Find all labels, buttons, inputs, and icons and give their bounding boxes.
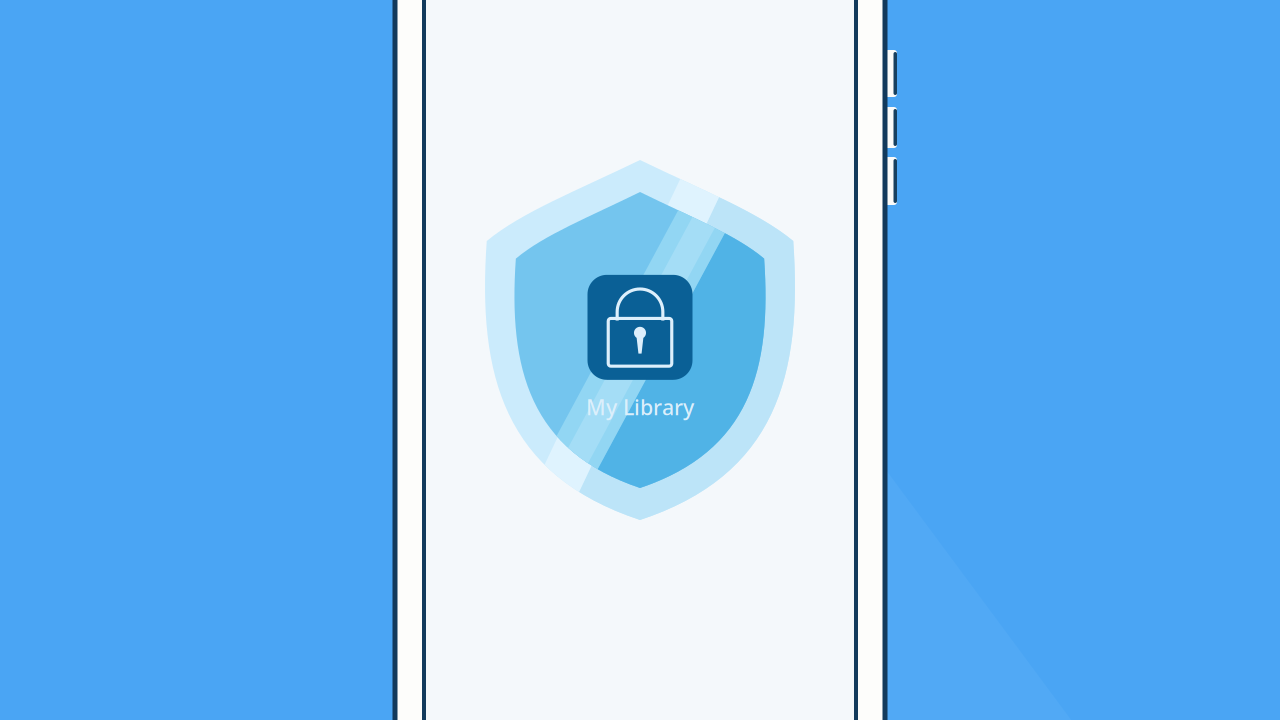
button[interactable]: My Library (482, 160, 798, 520)
staticText: My Library (586, 393, 694, 421)
